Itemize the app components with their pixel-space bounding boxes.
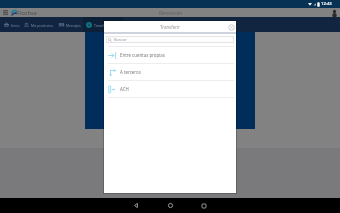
button[interactable]: Home bbox=[158, 198, 182, 213]
button[interactable]: Inicio bbox=[4, 17, 20, 32]
button[interactable]: Mensajes bbox=[59, 17, 81, 32]
staticText: Ficohsa bbox=[17, 9, 37, 16]
staticText: Entre cuentas propias bbox=[120, 52, 165, 58]
button[interactable]: Entre cuentas propias bbox=[104, 47, 236, 63]
staticText: 12:43 bbox=[321, 1, 332, 7]
button[interactable]: Profile bbox=[328, 8, 340, 17]
button[interactable]: A terceros bbox=[104, 64, 236, 80]
staticText: Bienvenido bbox=[159, 10, 183, 16]
button[interactable]: Menu bbox=[1, 8, 9, 17]
staticText: Mensajes bbox=[66, 23, 81, 27]
staticText: Mis productos bbox=[31, 23, 54, 27]
staticText: Inicio bbox=[11, 23, 20, 27]
button[interactable]: Close bbox=[226, 22, 236, 32]
button[interactable]: ACH bbox=[104, 81, 236, 97]
button[interactable]: Buscar bbox=[106, 36, 234, 43]
staticText: Transferir bbox=[94, 23, 109, 27]
staticText: Buscar bbox=[114, 37, 127, 42]
staticText: Transferir bbox=[160, 24, 180, 30]
staticText: ACH bbox=[120, 86, 129, 92]
staticText: A terceros bbox=[120, 69, 141, 75]
button[interactable]: Transferir bbox=[86, 17, 109, 32]
button[interactable]: Back bbox=[124, 198, 148, 213]
button[interactable]: Recent apps bbox=[192, 198, 216, 213]
button[interactable]: Mis productos bbox=[24, 17, 54, 32]
